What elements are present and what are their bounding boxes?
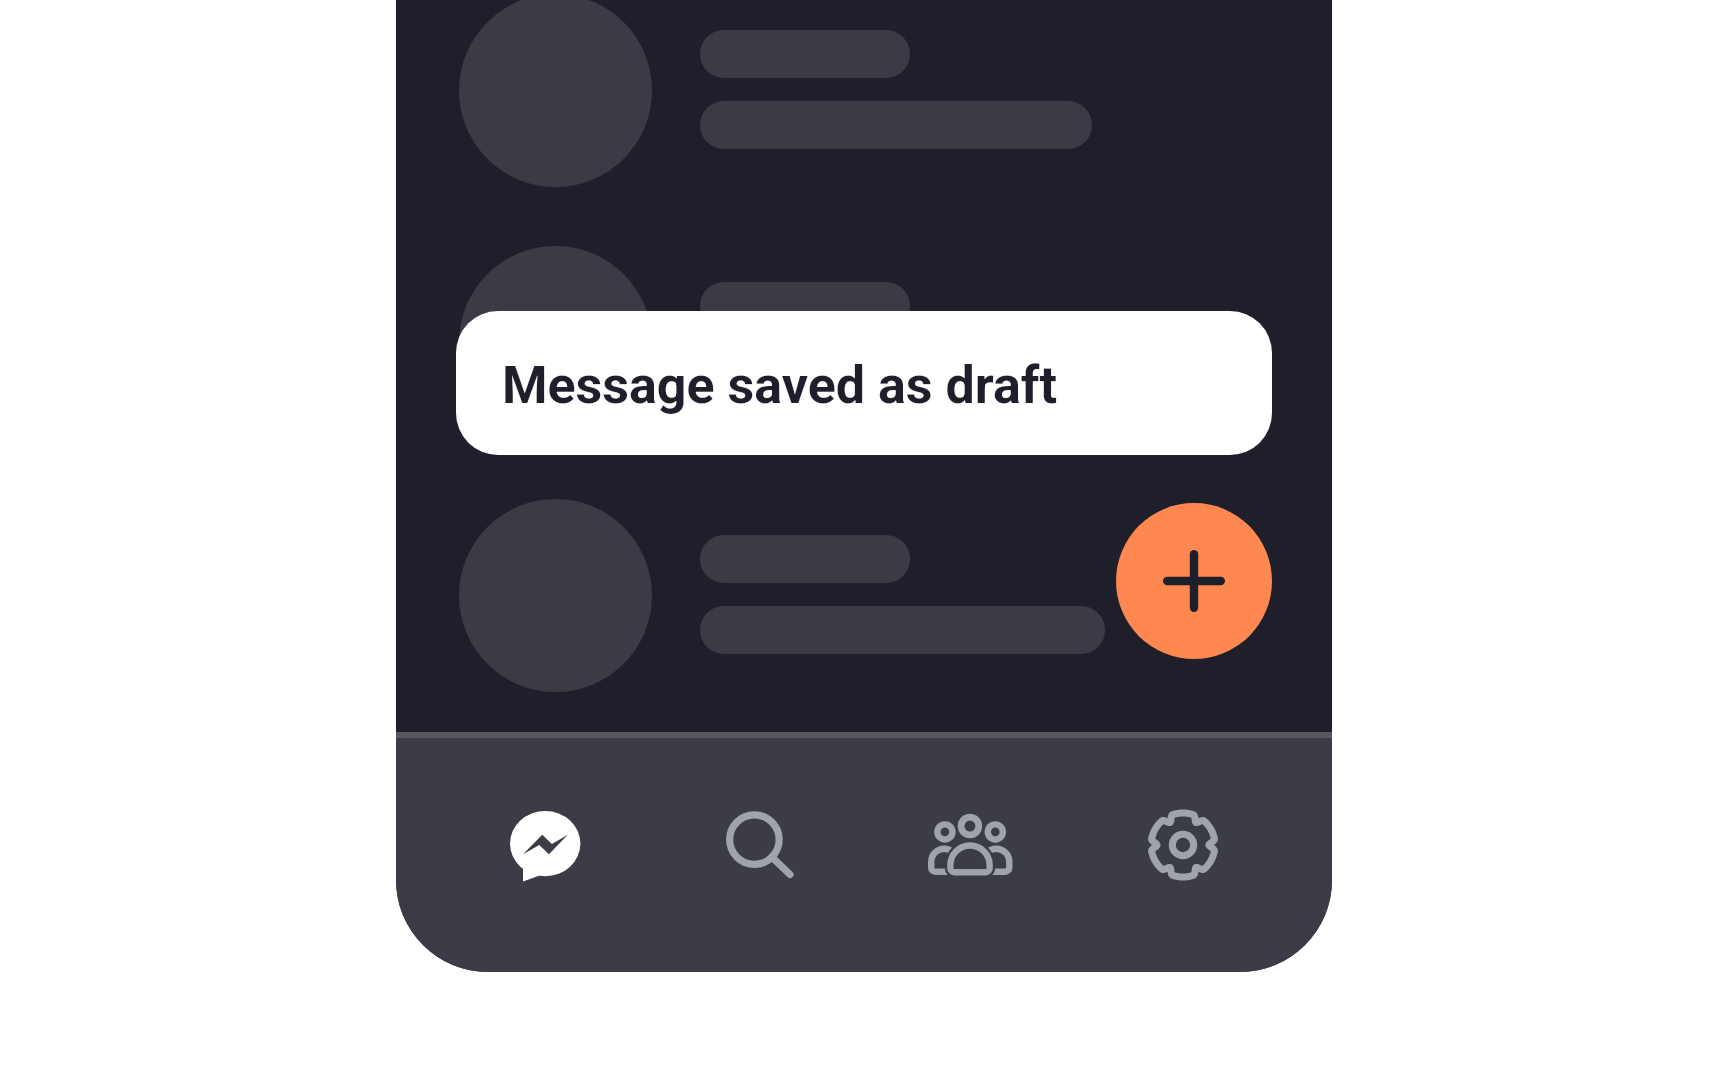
button[interactable]: New message <box>1116 503 1272 659</box>
button[interactable]: Chats <box>439 738 651 972</box>
button[interactable]: Message saved as draft <box>456 311 1272 455</box>
button[interactable]: Conversation <box>396 0 1332 200</box>
button[interactable]: Conversation <box>396 232 1332 452</box>
button[interactable]: People <box>863 738 1076 972</box>
button[interactable]: Search <box>651 738 863 972</box>
button[interactable]: Conversation <box>396 485 1332 705</box>
staticText: Message saved as draft <box>502 355 1057 416</box>
button[interactable]: Settings <box>1076 738 1289 972</box>
